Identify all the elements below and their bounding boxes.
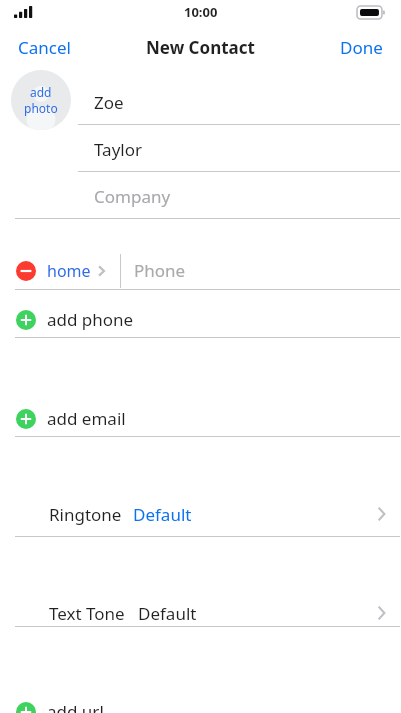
staticText: add url	[47, 700, 104, 713]
button[interactable]: Cancel	[18, 31, 71, 63]
button[interactable]: Add photo	[11, 70, 71, 130]
staticText: Company	[94, 185, 171, 208]
staticText: add	[30, 84, 52, 100]
button[interactable]: Add email	[0, 401, 401, 436]
button[interactable]: Remove phone number	[16, 261, 36, 281]
button[interactable]: Done	[340, 31, 383, 63]
staticText: 10:00	[184, 3, 218, 21]
button[interactable]: Taylor	[94, 134, 401, 164]
staticText: Zoe	[94, 91, 124, 114]
staticText: Default	[133, 503, 192, 526]
staticText: Ringtone	[49, 503, 122, 526]
staticText: Default	[138, 602, 197, 625]
button[interactable]: Add phone	[0, 302, 401, 337]
staticText: add email	[47, 407, 126, 430]
staticText: Done	[340, 36, 383, 59]
button[interactable]: Zoe	[94, 87, 401, 117]
staticText: photo	[24, 100, 58, 116]
other: Add email	[16, 409, 36, 429]
button[interactable]: Ringtone	[0, 500, 401, 528]
button[interactable]: home	[47, 252, 119, 289]
button[interactable]: Phone	[134, 252, 401, 289]
button[interactable]: Add url	[0, 694, 401, 713]
staticText: New Contact	[146, 36, 255, 59]
button[interactable]: Company	[94, 181, 401, 211]
button[interactable]: Text Tone	[0, 599, 401, 627]
staticText: Text Tone	[49, 602, 125, 625]
staticText: Cancel	[18, 36, 71, 59]
staticText: Taylor	[94, 138, 142, 161]
staticText: Phone	[134, 259, 186, 282]
other: Add phone	[16, 310, 36, 330]
staticText: add phone	[47, 308, 134, 331]
other: Add url	[16, 702, 36, 713]
staticText: home	[47, 260, 91, 282]
